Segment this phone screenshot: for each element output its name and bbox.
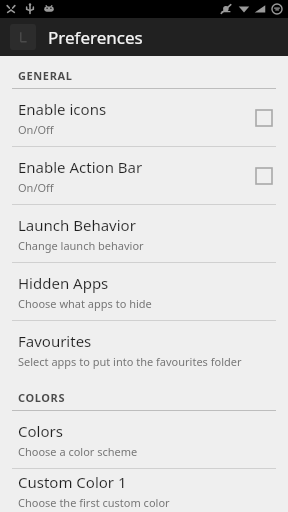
staticText: Preferences xyxy=(48,26,143,49)
button[interactable]: Custom Color 1 xyxy=(0,469,288,512)
button[interactable]: Enable Action Bar xyxy=(0,147,288,204)
staticText: Change launch behavior xyxy=(18,238,144,253)
staticText: Select apps to put into the favourites f… xyxy=(18,354,242,369)
staticText: Hidden Apps xyxy=(18,273,109,293)
staticText: Colors xyxy=(18,421,63,441)
staticText: COLORS xyxy=(18,390,66,405)
staticText: Launch Behavior xyxy=(18,215,136,235)
button[interactable]: Colors xyxy=(0,411,288,468)
staticText: Custom Color 1 xyxy=(18,472,127,492)
staticText: On/Off xyxy=(18,180,54,195)
staticText: Enable icons xyxy=(18,99,107,119)
staticText: Favourites xyxy=(18,331,92,351)
button[interactable]: Favourites xyxy=(0,321,288,378)
staticText: Enable Action Bar xyxy=(18,157,143,177)
staticText: On/Off xyxy=(18,122,54,137)
staticText: Choose the first custom color xyxy=(18,495,170,510)
button[interactable]: Enable icons xyxy=(0,89,288,146)
button[interactable]: Hidden Apps xyxy=(0,263,288,320)
other: Enable icons toggle xyxy=(256,110,272,126)
staticText: Choose what apps to hide xyxy=(18,296,152,311)
other: Enable Action Bar toggle xyxy=(256,168,272,184)
staticText: GENERAL xyxy=(18,68,73,83)
staticText: Choose a color scheme xyxy=(18,444,138,459)
button[interactable]: Launch Behavior xyxy=(0,205,288,262)
button[interactable]: App icon, navigate up xyxy=(10,24,36,50)
